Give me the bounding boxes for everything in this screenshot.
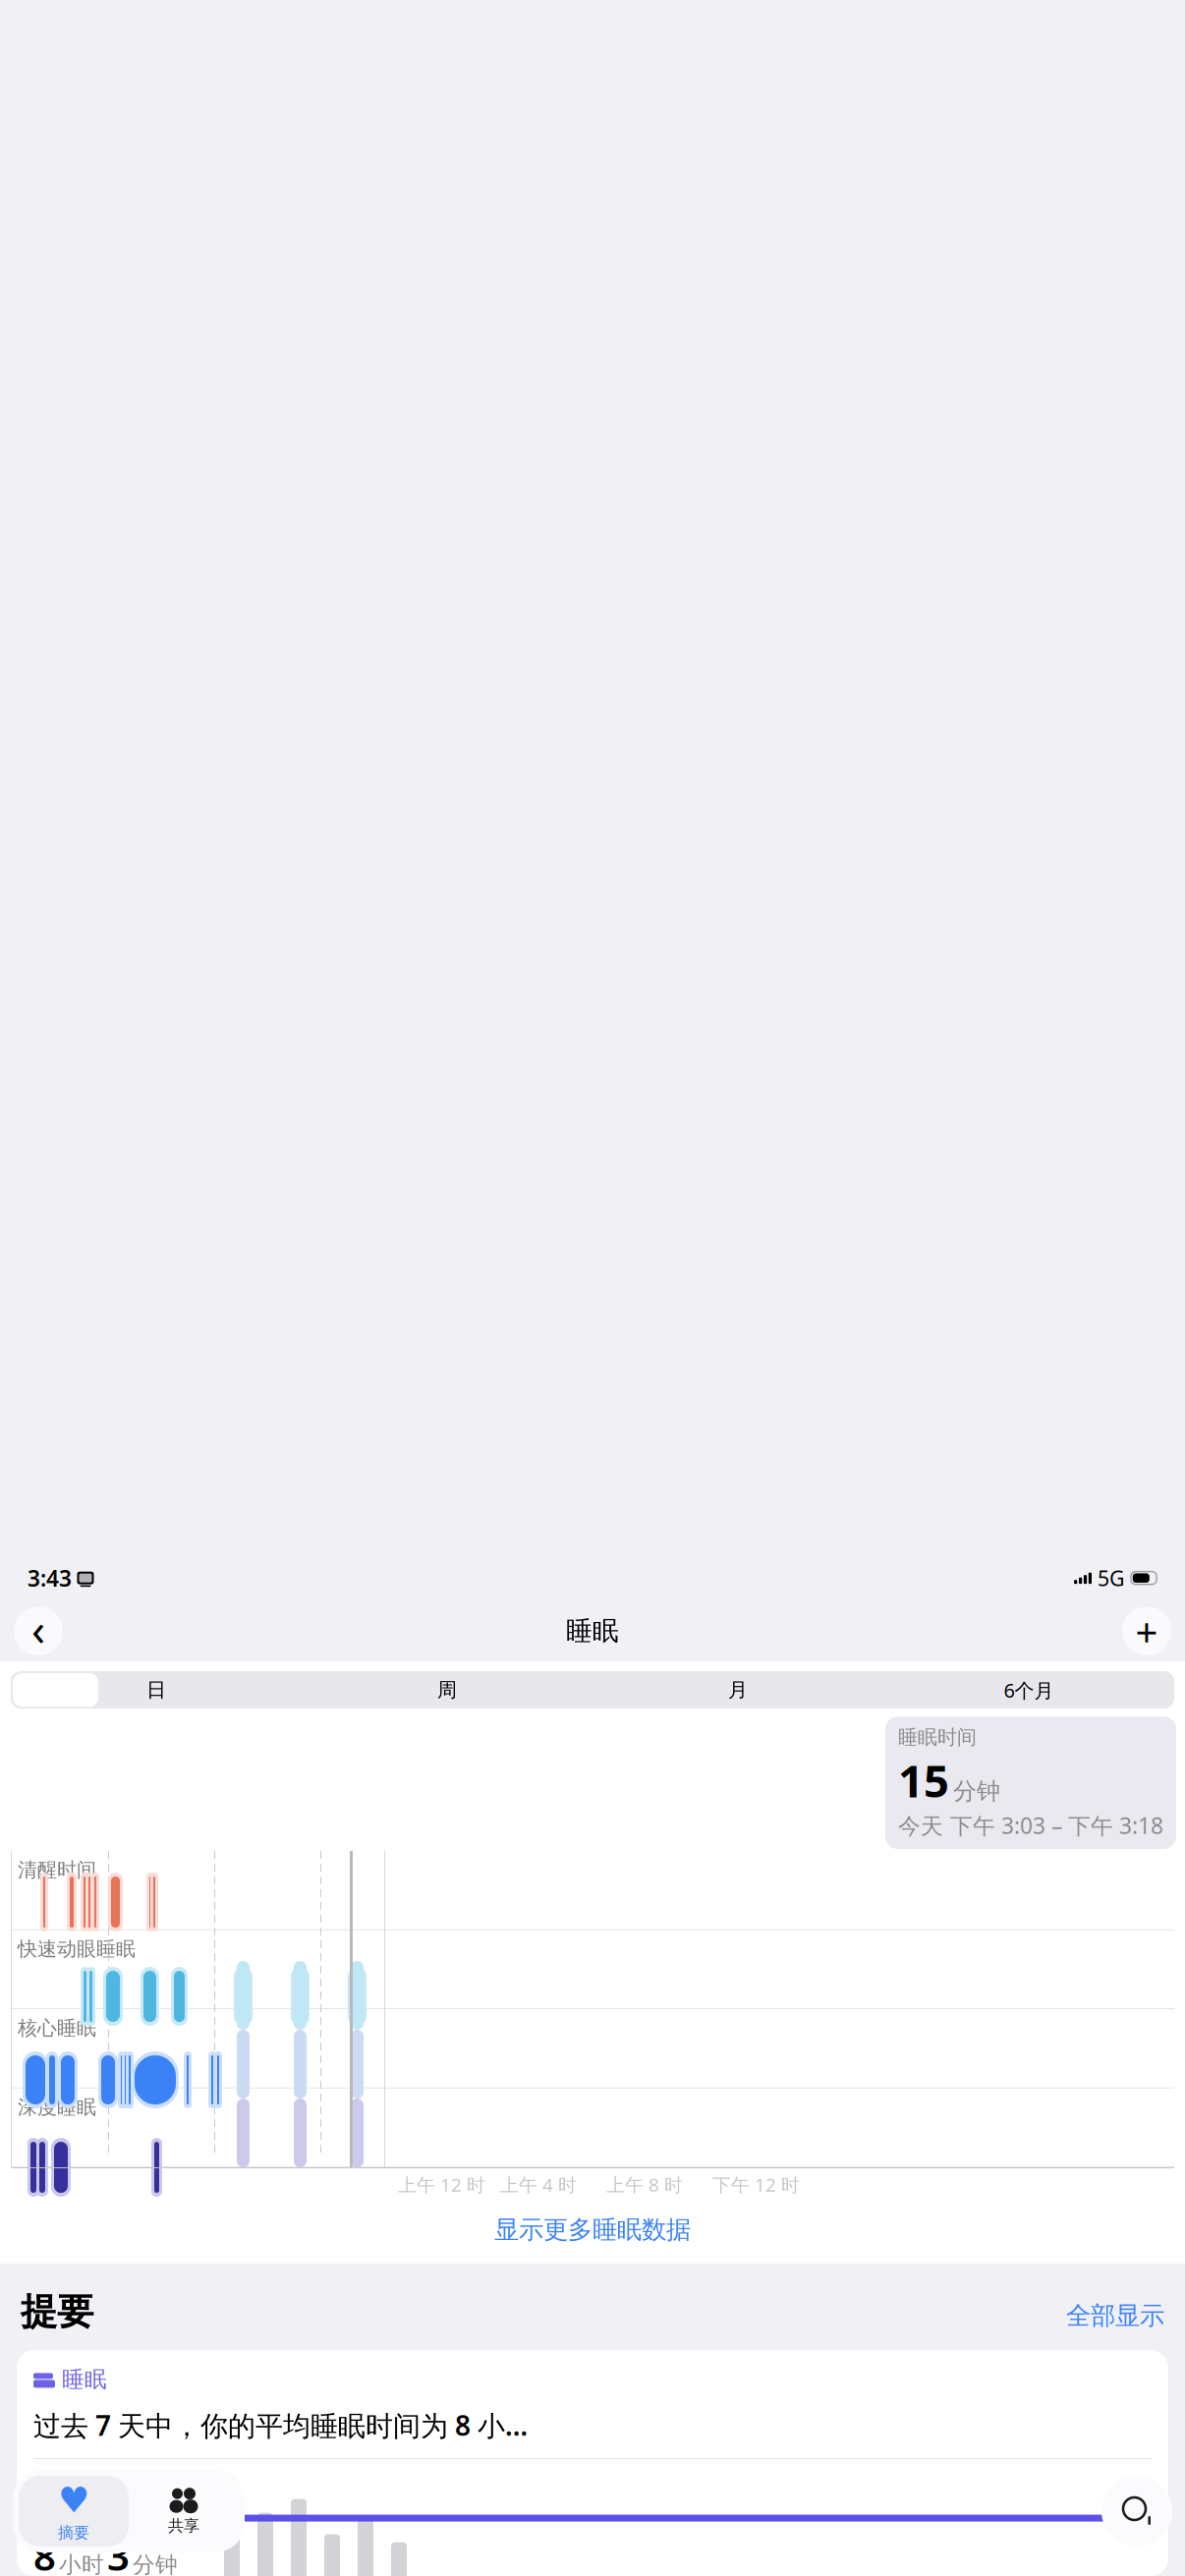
button[interactable]: 日	[11, 1671, 302, 1709]
button[interactable]: ♥	[19, 2476, 129, 2547]
staticText: 睡眠	[566, 1615, 619, 1647]
staticText: 上午 12 时	[398, 2172, 485, 2197]
staticText: 深度睡眠	[18, 2095, 96, 2119]
button[interactable]: 显示更多睡眠数据	[0, 2202, 1185, 2258]
button[interactable]: 睡眠	[17, 2350, 1168, 2576]
staticText: ‹	[31, 1599, 45, 1658]
button[interactable]: 全部显示	[1066, 2300, 1164, 2331]
button[interactable]: 共享	[129, 2476, 239, 2547]
button[interactable]: 6个月	[883, 1671, 1174, 1709]
staticText: 显示更多睡眠数据	[494, 2214, 691, 2245]
staticText: 过去 7 天中，你的平均睡眠时间为 8 小…	[33, 2407, 528, 2443]
staticText: 月	[728, 1678, 748, 1702]
staticText: 小时	[59, 2551, 104, 2576]
button[interactable]: 搜索	[1101, 2476, 1172, 2547]
staticText: 3:43	[28, 1563, 72, 1593]
staticText: 核心睡眠	[18, 2016, 96, 2040]
button[interactable]: 返回	[14, 1607, 63, 1656]
staticText: 下午 12 时	[712, 2172, 800, 2197]
button[interactable]: 添加数据	[1122, 1607, 1171, 1656]
staticText: 5G	[1098, 1564, 1125, 1592]
staticText: 3	[107, 2529, 130, 2576]
staticText: 睡眠时间	[898, 1725, 977, 1750]
staticText: 摘要	[58, 2523, 89, 2542]
staticText: 8	[33, 2529, 56, 2576]
staticText: ♥	[58, 2480, 89, 2520]
staticText: 上午 8 时	[606, 2172, 683, 2197]
staticText: 提要	[21, 2289, 93, 2334]
staticText: 周	[437, 1678, 457, 1702]
staticText: 睡眠	[62, 2366, 107, 2393]
staticText: 分钟	[953, 1777, 1000, 1806]
staticText: 快速动眼睡眠	[18, 1937, 136, 1961]
staticText: 6个月	[1004, 1677, 1054, 1703]
staticText: 平均睡眠时间	[33, 2471, 151, 2495]
staticText: 上午 4 时	[500, 2172, 577, 2197]
button[interactable]: 周	[302, 1671, 592, 1709]
staticText: 共享	[168, 2516, 199, 2536]
staticText: 日	[146, 1678, 166, 1702]
staticText: 15	[898, 1750, 949, 1810]
staticText: 清醒时间	[18, 1858, 96, 1882]
button[interactable]: 月	[592, 1671, 883, 1709]
staticText: 今天 下午 3:03 – 下午 3:18	[898, 1811, 1163, 1840]
staticText: +	[1135, 1605, 1158, 1657]
staticText: 分钟	[133, 2551, 178, 2576]
staticText: 全部显示	[1066, 2300, 1164, 2331]
